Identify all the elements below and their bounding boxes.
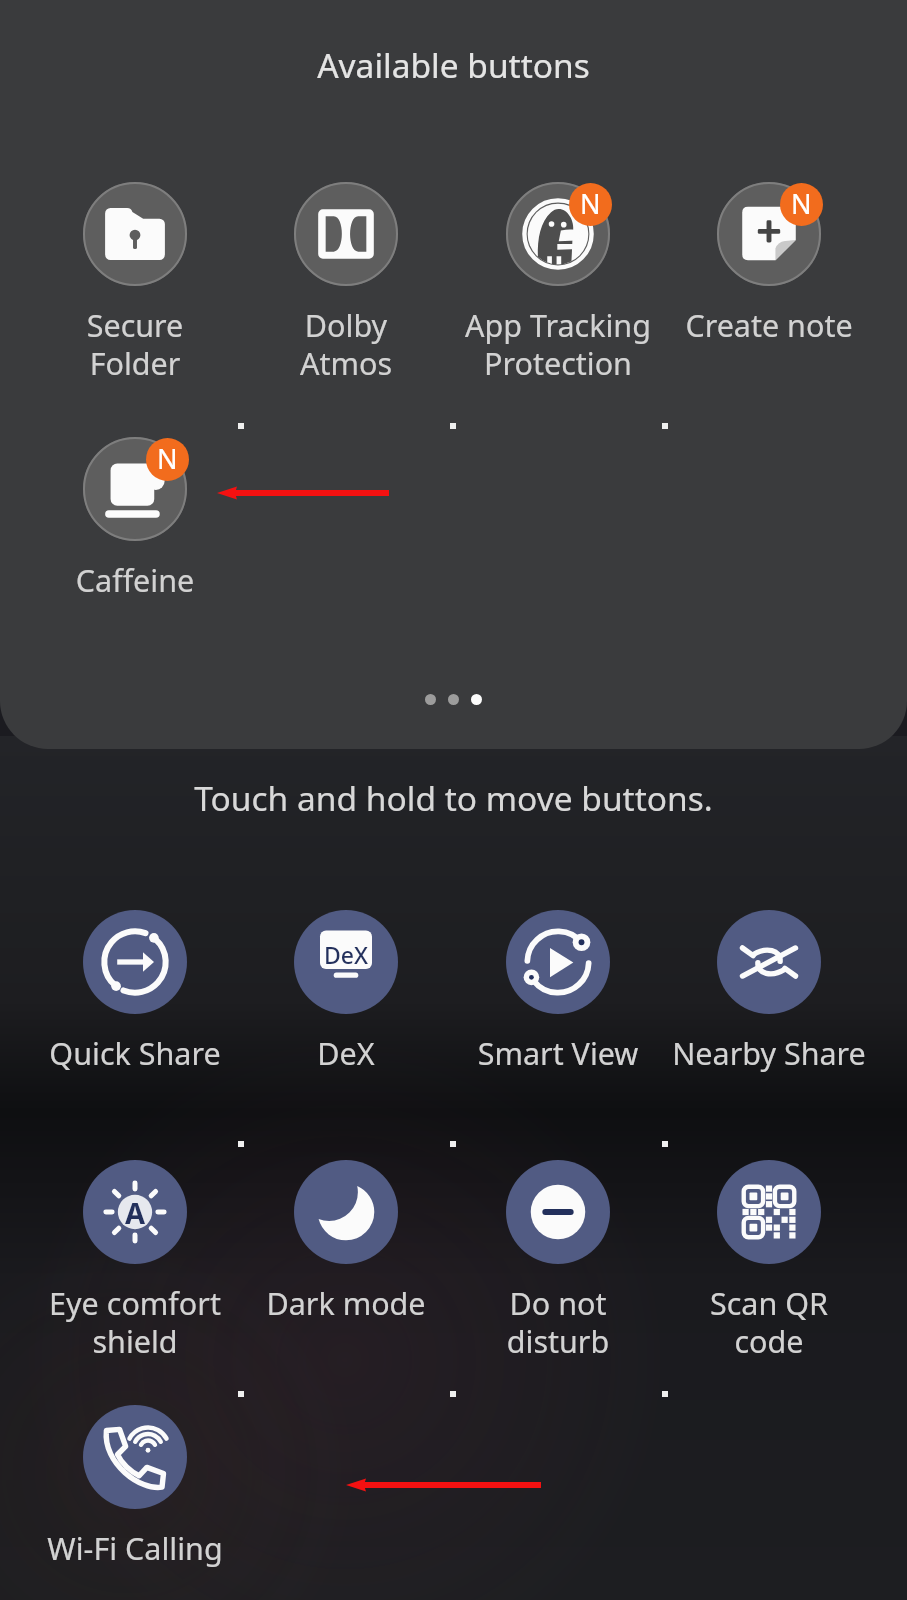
staticText: N: [157, 440, 178, 477]
staticText: Wi-Fi Calling: [30, 1527, 240, 1569]
staticText: DeX: [324, 939, 369, 970]
staticText: Nearby Share: [664, 1032, 874, 1074]
button[interactable]: Caffeine: [30, 437, 240, 601]
button[interactable]: App Tracking Protection: [453, 182, 663, 384]
staticText: Dark mode: [241, 1282, 451, 1324]
button[interactable]: Wi-Fi Calling: [30, 1405, 240, 1569]
staticText: Create note: [664, 304, 874, 346]
staticText: N: [791, 185, 812, 222]
button[interactable]: Smart View: [453, 910, 663, 1074]
button[interactable]: Scan QR code: [664, 1160, 874, 1362]
button[interactable]: Create note: [664, 182, 874, 346]
button[interactable]: Dark mode: [241, 1160, 451, 1324]
staticText: DeX: [241, 1032, 451, 1074]
button[interactable]: Do not disturb: [453, 1160, 663, 1362]
staticText: Available buttons: [0, 42, 907, 88]
staticText: Do not disturb: [453, 1282, 663, 1362]
button[interactable]: Dolby Atmos: [241, 182, 451, 384]
button[interactable]: Secure Folder: [30, 182, 240, 384]
staticText: Secure Folder: [30, 304, 240, 384]
button[interactable]: Nearby Share: [664, 910, 874, 1074]
button[interactable]: DeX: [241, 910, 451, 1074]
staticText: App Tracking Protection: [453, 304, 663, 384]
staticText: Caffeine: [30, 559, 240, 601]
button[interactable]: Eye comfort shield: [30, 1160, 240, 1362]
staticText: N: [580, 185, 601, 222]
button[interactable]: Quick Share: [30, 910, 240, 1074]
staticText: Smart View: [453, 1032, 663, 1074]
staticText: A: [125, 1193, 146, 1232]
staticText: Quick Share: [30, 1032, 240, 1074]
staticText: Scan QR code: [664, 1282, 874, 1362]
staticText: Touch and hold to move buttons.: [0, 775, 907, 821]
staticText: Dolby Atmos: [241, 304, 451, 384]
staticText: Eye comfort shield: [30, 1282, 240, 1362]
